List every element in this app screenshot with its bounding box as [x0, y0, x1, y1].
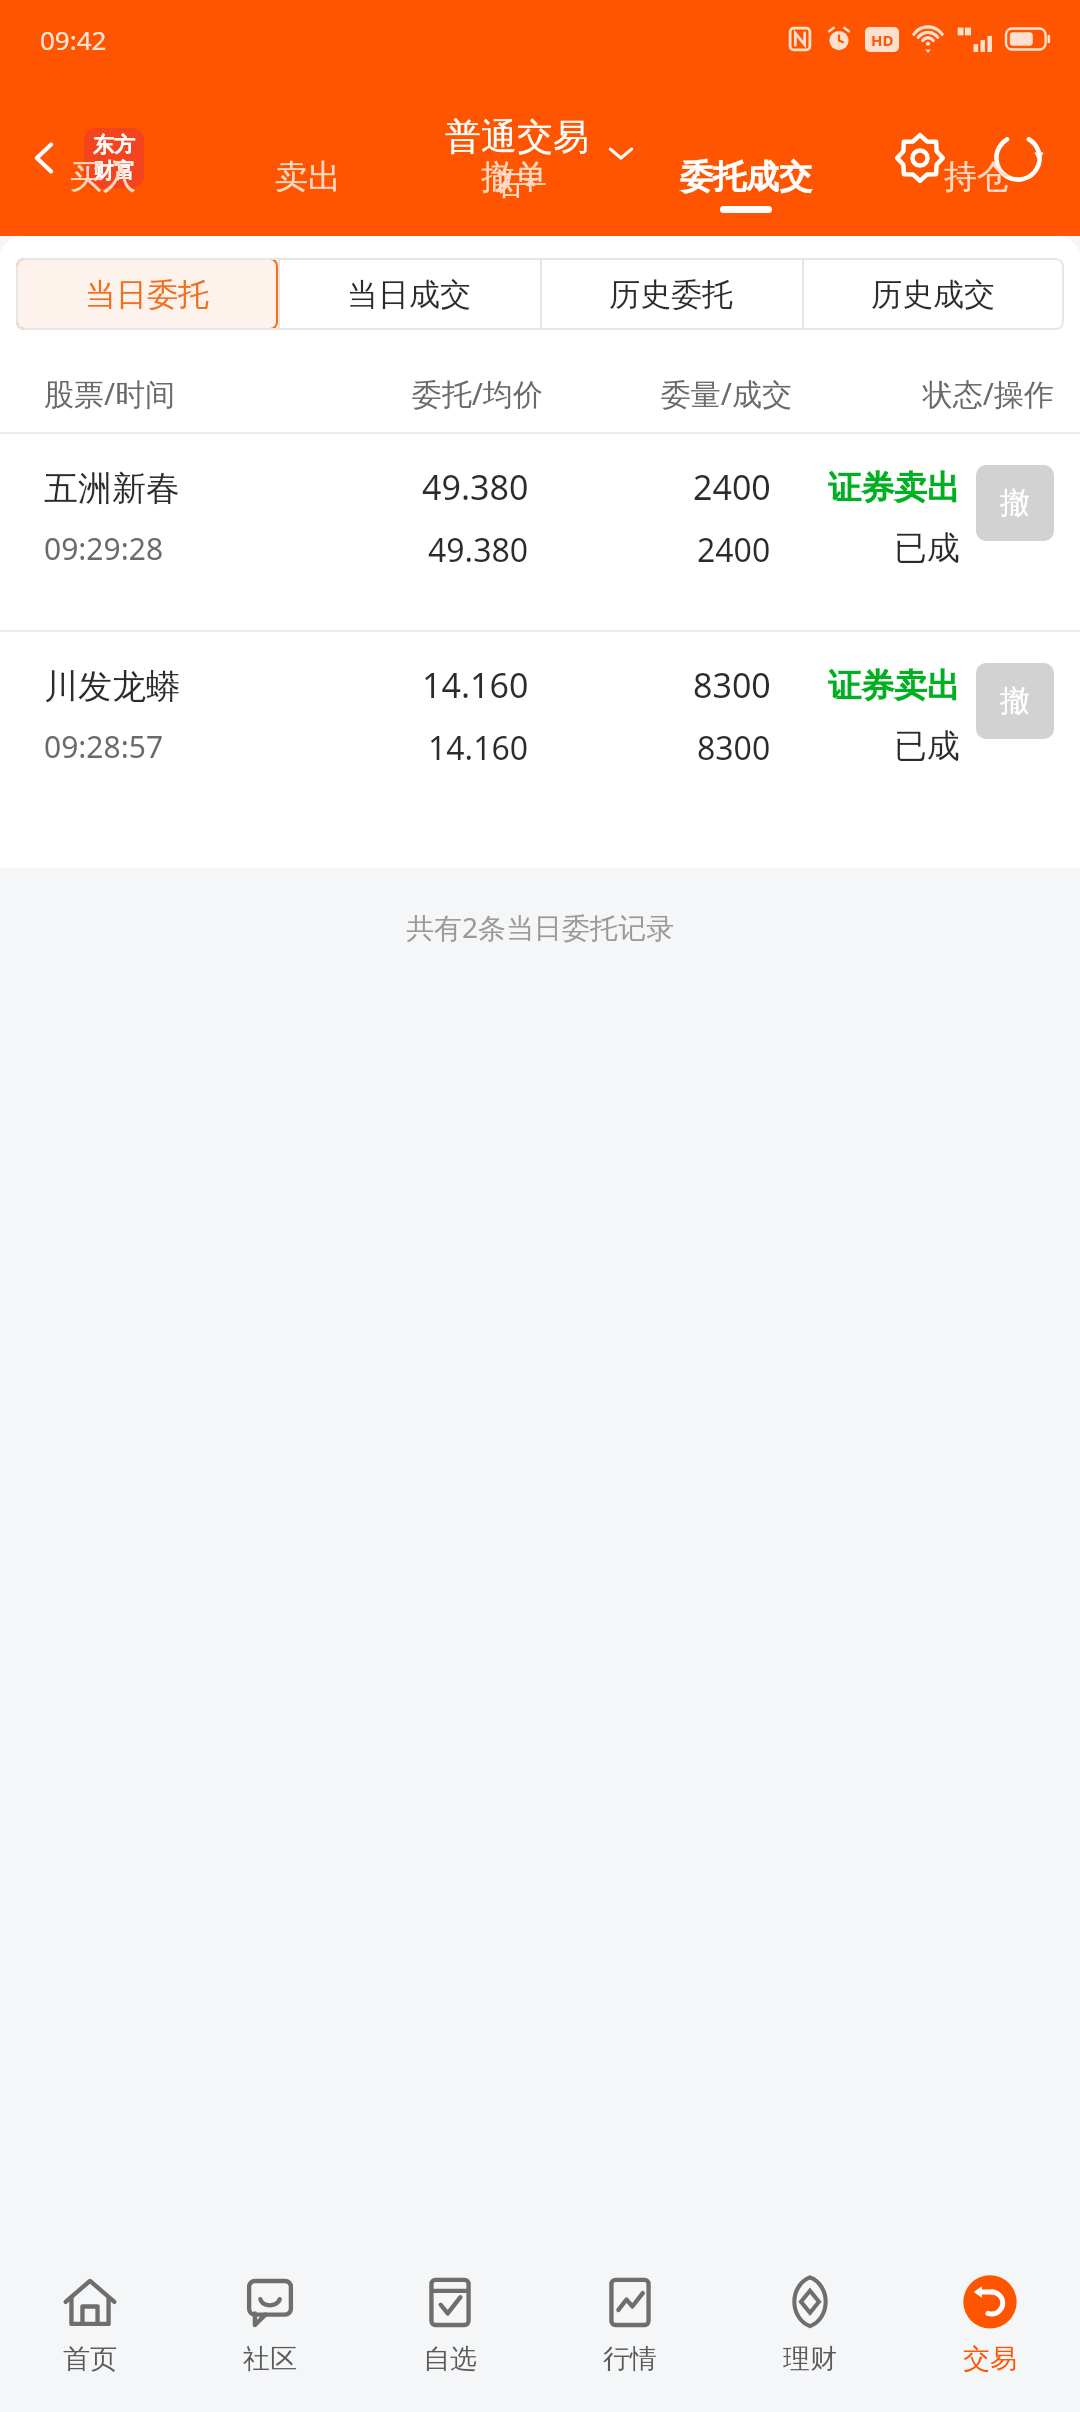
staticText: 撤	[1000, 484, 1030, 522]
button[interactable]: 当日委托	[16, 258, 278, 330]
button[interactable]: 五洲新春	[0, 434, 1080, 630]
button[interactable]: 撤单	[411, 156, 617, 236]
staticText: 09:29:28	[44, 528, 164, 569]
button[interactable]: 行情	[540, 2260, 720, 2412]
button[interactable]: 返回	[10, 123, 80, 193]
button[interactable]: 交易	[900, 2260, 1080, 2412]
staticText: 8300	[693, 662, 771, 708]
staticText: 撤单	[481, 156, 547, 198]
button[interactable]: 普通交易	[445, 114, 635, 203]
staticText: 历史成交	[871, 275, 995, 314]
staticText: 09:42	[40, 22, 107, 57]
staticText: 证券卖出	[828, 467, 960, 509]
staticText: 五洲新春	[44, 467, 180, 510]
button[interactable]: 持仓	[874, 156, 1080, 236]
staticText: 撤	[1000, 682, 1030, 720]
staticText: 当日成交	[347, 275, 471, 314]
button[interactable]: 买入	[0, 156, 205, 236]
staticText: 当日委托	[85, 275, 209, 314]
staticText: 社区	[243, 2342, 297, 2376]
button[interactable]: 当日成交	[278, 258, 540, 330]
button[interactable]: 卖出	[205, 156, 411, 236]
button[interactable]: 撤	[976, 663, 1054, 739]
staticText: 首页	[63, 2342, 117, 2376]
button[interactable]: 历史成交	[802, 258, 1064, 330]
staticText: 49.380	[428, 528, 529, 572]
staticText: 历史委托	[609, 275, 733, 314]
staticText: HD	[871, 30, 894, 50]
staticText: 委托/均价	[294, 373, 543, 414]
staticText: 委托成交	[680, 156, 812, 198]
staticText: 49.380	[422, 464, 529, 510]
staticText: 已成	[894, 725, 960, 767]
button[interactable]: 委托成交	[617, 156, 874, 236]
staticText: 09:28:57	[44, 726, 164, 767]
staticText: 状态/操作	[792, 373, 1054, 414]
staticText: 川发龙蟒	[44, 665, 180, 708]
staticText: 普通交易	[445, 114, 589, 159]
staticText: 买入	[70, 156, 136, 198]
button[interactable]: 首页	[0, 2260, 180, 2412]
staticText: 共有2条当日委托记录	[406, 908, 675, 946]
staticText: 卖出	[275, 156, 341, 198]
staticText: 东方	[93, 132, 135, 158]
staticText: 8300	[697, 726, 771, 770]
button[interactable]: 川发龙蟒	[0, 632, 1080, 828]
button[interactable]: 理财	[720, 2260, 900, 2412]
staticText: 2400	[693, 464, 771, 510]
staticText: 财富	[93, 158, 135, 184]
button[interactable]: 社区	[180, 2260, 360, 2412]
button[interactable]: 撤	[976, 465, 1054, 541]
staticText: 2400	[697, 528, 771, 572]
staticText: 行情	[603, 2342, 657, 2376]
staticText: 已成	[894, 527, 960, 569]
staticText: 交易	[963, 2342, 1017, 2376]
button[interactable]: 刷新	[982, 122, 1054, 194]
staticText: 自选	[423, 2342, 477, 2376]
staticText: 持仓	[944, 156, 1010, 198]
button[interactable]: 东方	[84, 128, 144, 188]
button[interactable]: 自选	[360, 2260, 540, 2412]
button[interactable]: 设置	[884, 122, 956, 194]
staticText: 证券卖出	[828, 665, 960, 707]
staticText: 股票/时间	[44, 373, 294, 414]
staticText: 14.160	[428, 726, 529, 770]
staticText: 14.160	[422, 662, 529, 708]
staticText: 石*	[495, 165, 539, 203]
button[interactable]: 历史委托	[540, 258, 802, 330]
staticText: 理财	[783, 2342, 837, 2376]
staticText: 委量/成交	[543, 373, 792, 414]
